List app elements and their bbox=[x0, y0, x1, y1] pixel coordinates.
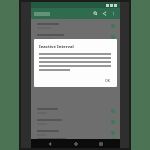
button[interactable]: Status bbox=[31, 116, 120, 127]
button[interactable]: Back bbox=[43, 139, 57, 148]
button[interactable]: Status bbox=[31, 20, 120, 31]
button[interactable]: Status bbox=[31, 42, 120, 53]
button[interactable]: OK bbox=[103, 77, 113, 84]
button[interactable]: Status bbox=[31, 53, 120, 64]
button[interactable]: Status bbox=[31, 138, 120, 139]
button[interactable]: Status bbox=[111, 24, 115, 28]
button[interactable]: Status bbox=[31, 105, 120, 116]
button[interactable]: Recents bbox=[94, 139, 108, 148]
button[interactable]: Status bbox=[111, 131, 115, 135]
button[interactable]: Home bbox=[69, 139, 83, 148]
button[interactable]: Search bbox=[91, 9, 100, 18]
button[interactable]: Status bbox=[31, 31, 120, 42]
button[interactable]: More options bbox=[109, 9, 118, 18]
staticText: Inactive Interval bbox=[39, 44, 74, 50]
button[interactable]: Status bbox=[111, 120, 115, 124]
button[interactable]: Status bbox=[31, 127, 120, 138]
button[interactable]: Status bbox=[111, 35, 115, 39]
staticText: OK bbox=[105, 78, 111, 83]
button[interactable]: Share bbox=[100, 9, 109, 18]
button[interactable]: Status bbox=[111, 109, 115, 113]
